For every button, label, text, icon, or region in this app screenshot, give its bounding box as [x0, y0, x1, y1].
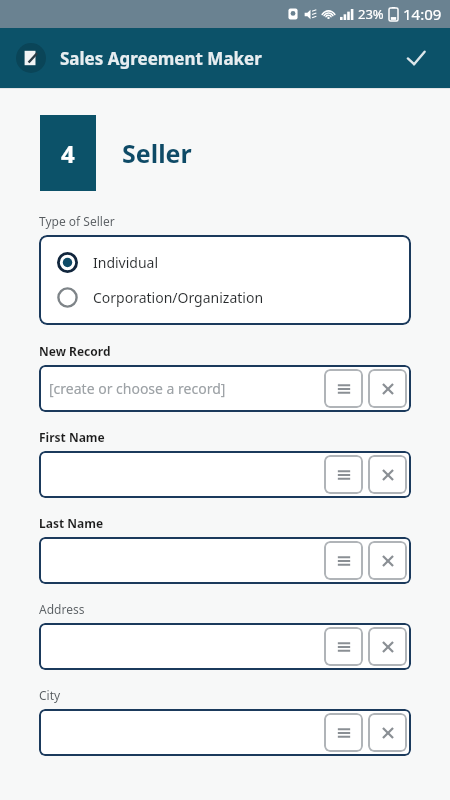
button[interactable]: Choose from list	[324, 713, 363, 752]
staticText: Type of Seller	[39, 213, 115, 229]
button[interactable]: Clear	[368, 541, 407, 580]
staticText: Address	[39, 601, 85, 617]
staticText: First Name	[39, 429, 105, 445]
button[interactable]: Choose from list	[324, 369, 363, 408]
staticText: City	[39, 687, 61, 703]
button[interactable]: Choose from list	[39, 451, 411, 498]
staticText: Individual	[93, 253, 159, 272]
button[interactable]: Choose from list	[39, 623, 411, 670]
button[interactable]: Clear	[368, 627, 407, 666]
button[interactable]: Clear	[368, 369, 407, 408]
button[interactable]: Choose from list	[324, 455, 363, 494]
staticText: 4	[61, 137, 75, 170]
button[interactable]: [create or choose a record]	[39, 365, 411, 412]
button[interactable]: Individual	[39, 245, 411, 280]
button[interactable]: Choose from list	[324, 541, 363, 580]
staticText: 23%	[358, 5, 384, 23]
button[interactable]: Choose from list	[324, 627, 363, 666]
staticText: Sales Agreement Maker	[60, 47, 262, 70]
staticText: 14:09	[403, 4, 442, 24]
staticText: Corporation/Organization	[93, 288, 264, 307]
staticText: [create or choose a record]	[49, 379, 226, 398]
button[interactable]: Clear	[368, 713, 407, 752]
button[interactable]: Choose from list	[39, 709, 411, 756]
staticText: Seller	[122, 136, 192, 170]
button[interactable]: Confirm	[396, 38, 436, 78]
staticText: New Record	[39, 343, 111, 359]
button[interactable]: Corporation/Organization	[39, 280, 411, 315]
button[interactable]: Clear	[368, 455, 407, 494]
staticText: Last Name	[39, 515, 104, 531]
button[interactable]: Choose from list	[39, 537, 411, 584]
